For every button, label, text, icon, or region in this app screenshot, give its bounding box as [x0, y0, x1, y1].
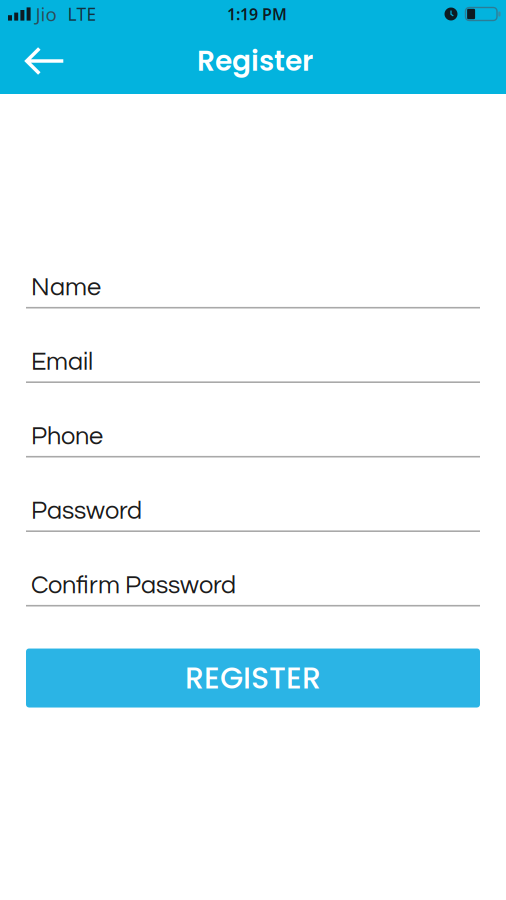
staticText: Jio: [36, 2, 57, 26]
button[interactable]: REGISTER: [26, 648, 480, 707]
staticText: Register: [197, 41, 313, 81]
staticText: Password: [31, 498, 142, 524]
staticText: REGISTER: [185, 657, 321, 699]
staticText: 1:19 PM: [227, 3, 287, 25]
staticText: LTE: [68, 2, 97, 25]
button[interactable]: Back: [11, 32, 79, 90]
staticText: Confirm Password: [31, 572, 236, 599]
staticText: Name: [31, 274, 101, 301]
staticText: Email: [31, 349, 93, 375]
staticText: Phone: [31, 423, 103, 450]
